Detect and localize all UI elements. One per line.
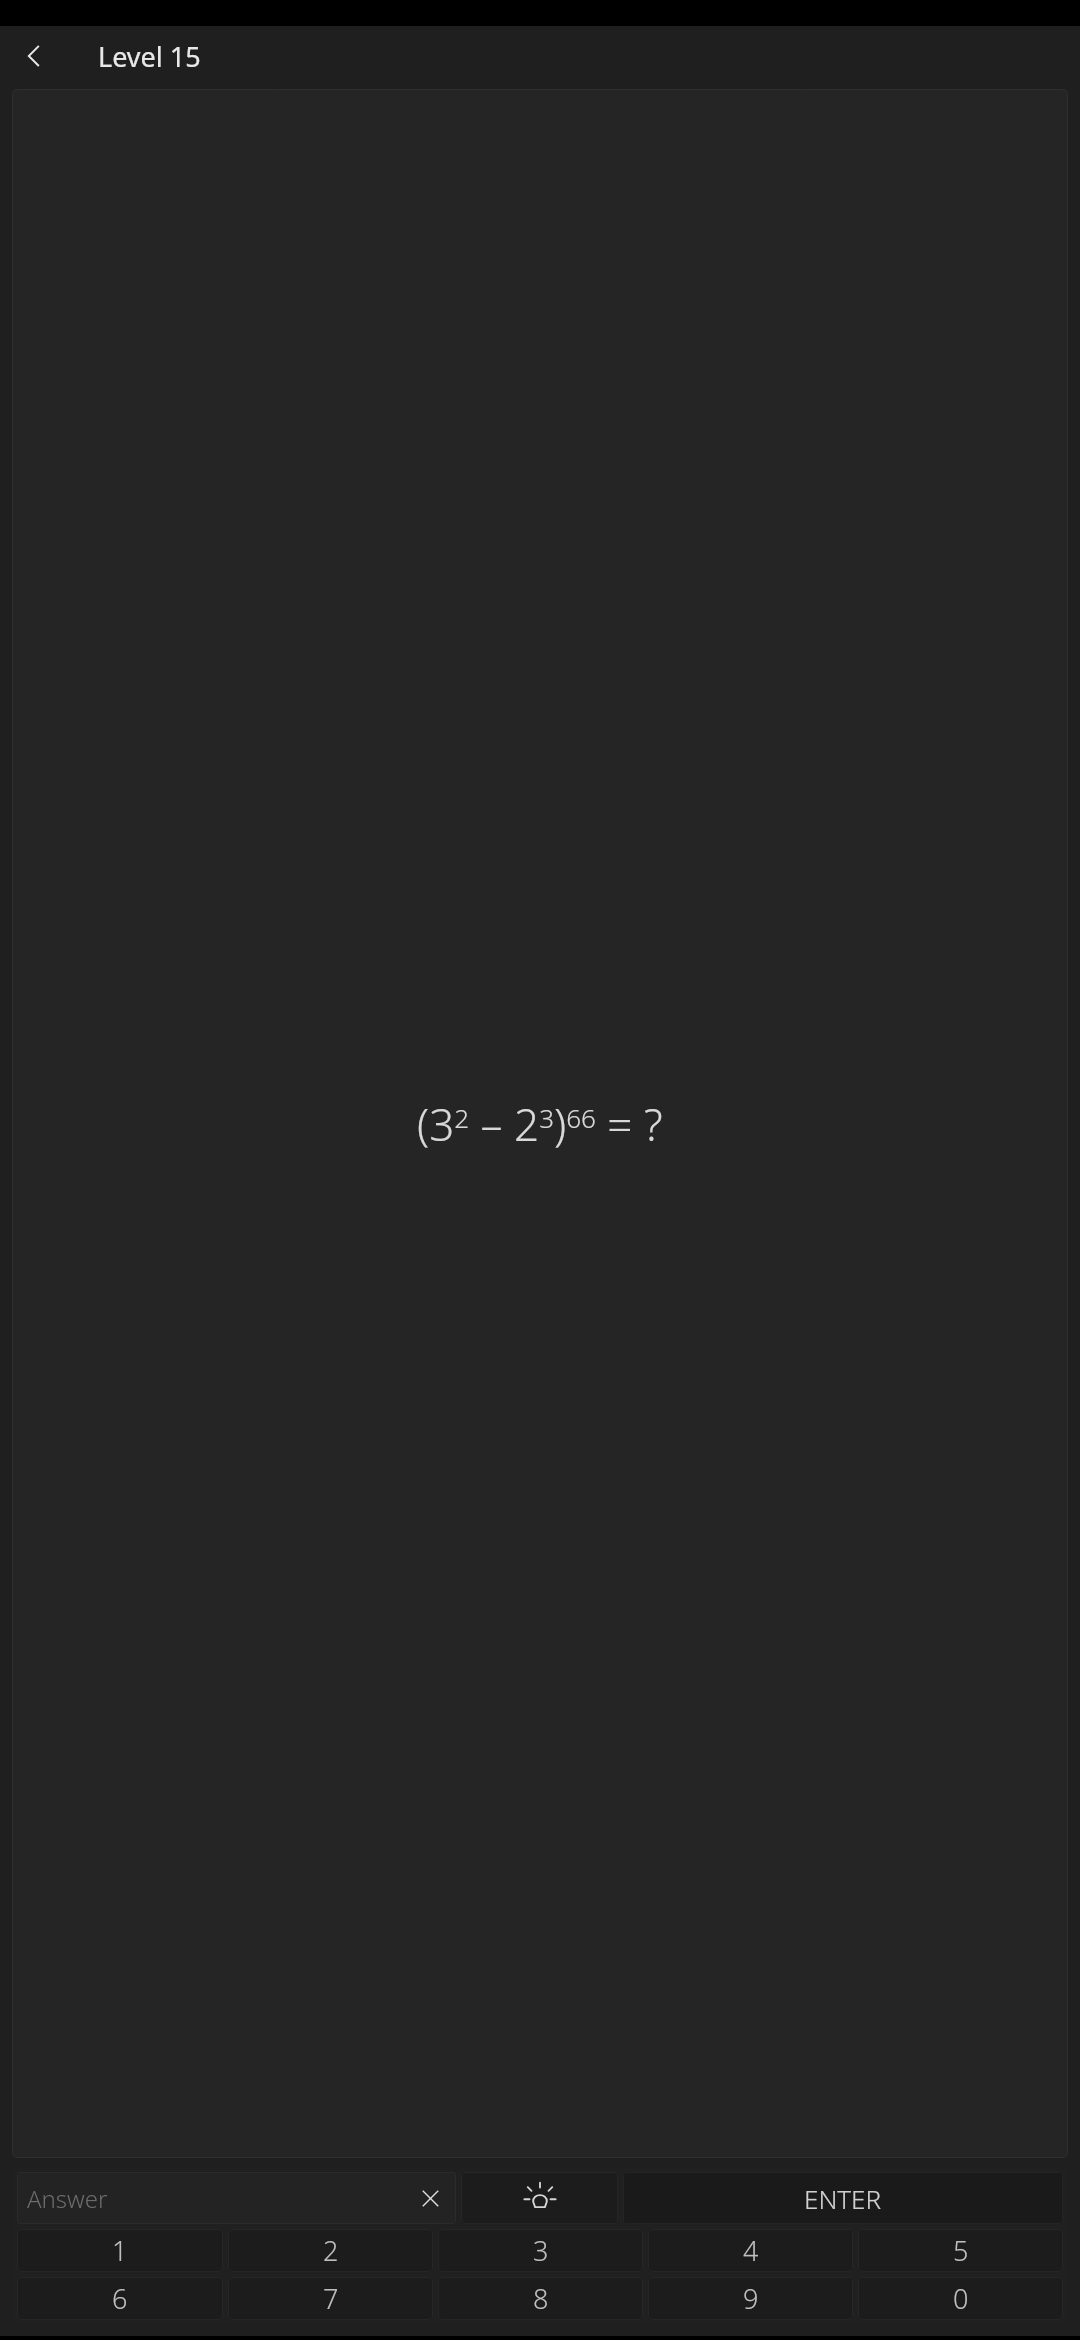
staticText: 2 [323, 2232, 339, 2269]
staticText: 7 [323, 2280, 339, 2317]
staticText: Level 15 [98, 38, 201, 75]
staticText: Answer [27, 2182, 414, 2215]
button[interactable]: 2 [228, 2229, 433, 2272]
button[interactable]: 5 [858, 2229, 1063, 2272]
staticText: ENTER [804, 2181, 882, 2216]
button[interactable]: 0 [858, 2277, 1063, 2320]
button[interactable]: 7 [228, 2277, 433, 2320]
button[interactable]: ENTER [623, 2172, 1063, 2224]
button[interactable]: 8 [438, 2277, 643, 2320]
button[interactable]: 3 [438, 2229, 643, 2272]
staticText: (32 – 23)66 = ? [417, 1094, 663, 1154]
button[interactable]: Answer [17, 2172, 456, 2224]
button[interactable]: Hint [461, 2172, 618, 2224]
button[interactable]: Back [10, 32, 58, 80]
staticText: 8 [533, 2280, 549, 2317]
button[interactable]: Clear [414, 2182, 446, 2214]
staticText: 0 [953, 2280, 969, 2317]
staticText: 4 [743, 2232, 759, 2269]
staticText: 1 [112, 2232, 128, 2269]
button[interactable]: 1 [17, 2229, 223, 2272]
staticText: 9 [743, 2280, 759, 2317]
button[interactable]: 6 [17, 2277, 223, 2320]
staticText: 5 [953, 2232, 969, 2269]
button[interactable]: 4 [648, 2229, 853, 2272]
staticText: 6 [112, 2280, 128, 2317]
button[interactable]: 9 [648, 2277, 853, 2320]
staticText: 3 [533, 2232, 549, 2269]
